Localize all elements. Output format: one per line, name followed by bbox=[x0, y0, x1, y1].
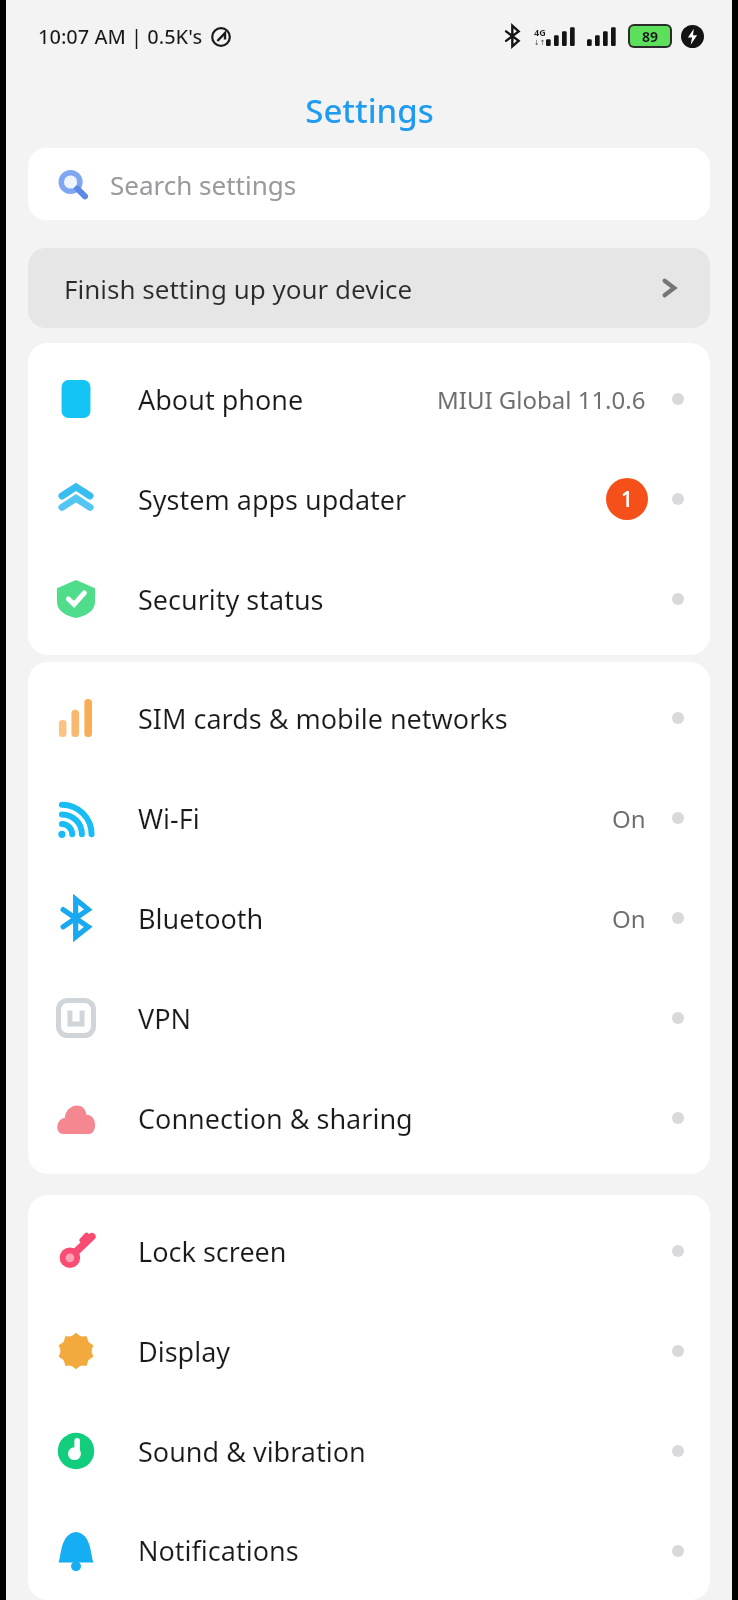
button[interactable]: Connection & sharing bbox=[28, 1068, 710, 1168]
staticText: Connection & sharing bbox=[138, 1100, 413, 1137]
staticText: About phone bbox=[138, 381, 304, 418]
staticText: VPN bbox=[138, 1000, 192, 1037]
button[interactable]: Security status bbox=[28, 549, 710, 649]
button[interactable]: Wi-Fi bbox=[28, 768, 710, 868]
staticText: 1 bbox=[621, 485, 634, 514]
staticText: On bbox=[612, 902, 646, 935]
staticText: Notifications bbox=[138, 1532, 299, 1569]
staticText: MIUI Global 11.0.6 bbox=[437, 383, 646, 416]
staticText: 89 bbox=[642, 27, 659, 46]
button[interactable]: VPN bbox=[28, 968, 710, 1068]
staticText: Settings bbox=[305, 88, 434, 133]
button[interactable]: Search settings bbox=[28, 148, 710, 220]
button[interactable]: Lock screen bbox=[28, 1201, 710, 1301]
staticText: Sound & vibration bbox=[138, 1433, 366, 1470]
button[interactable]: Notifications bbox=[28, 1501, 710, 1600]
staticText: Display bbox=[138, 1333, 231, 1370]
staticText: Bluetooth bbox=[138, 900, 264, 937]
button[interactable]: About phone bbox=[28, 349, 710, 449]
staticText: Wi-Fi bbox=[138, 800, 200, 837]
staticText: 10:07 AM | 0.5K's bbox=[38, 23, 203, 50]
staticText: System apps updater bbox=[138, 481, 407, 518]
staticText: ↓↑ bbox=[534, 39, 546, 47]
button[interactable]: Sound & vibration bbox=[28, 1401, 710, 1501]
button[interactable]: Bluetooth bbox=[28, 868, 710, 968]
button[interactable]: Finish setting up your device bbox=[28, 248, 710, 328]
staticText: Lock screen bbox=[138, 1233, 287, 1270]
staticText: Security status bbox=[138, 581, 324, 618]
button[interactable]: SIM cards & mobile networks bbox=[28, 668, 710, 768]
staticText: SIM cards & mobile networks bbox=[138, 700, 508, 737]
button[interactable]: System apps updater bbox=[28, 449, 710, 549]
staticText: 4G bbox=[534, 26, 546, 38]
button[interactable]: Display bbox=[28, 1301, 710, 1401]
staticText: Search settings bbox=[110, 167, 297, 202]
staticText: On bbox=[612, 802, 646, 835]
staticText: Finish setting up your device bbox=[64, 271, 413, 306]
